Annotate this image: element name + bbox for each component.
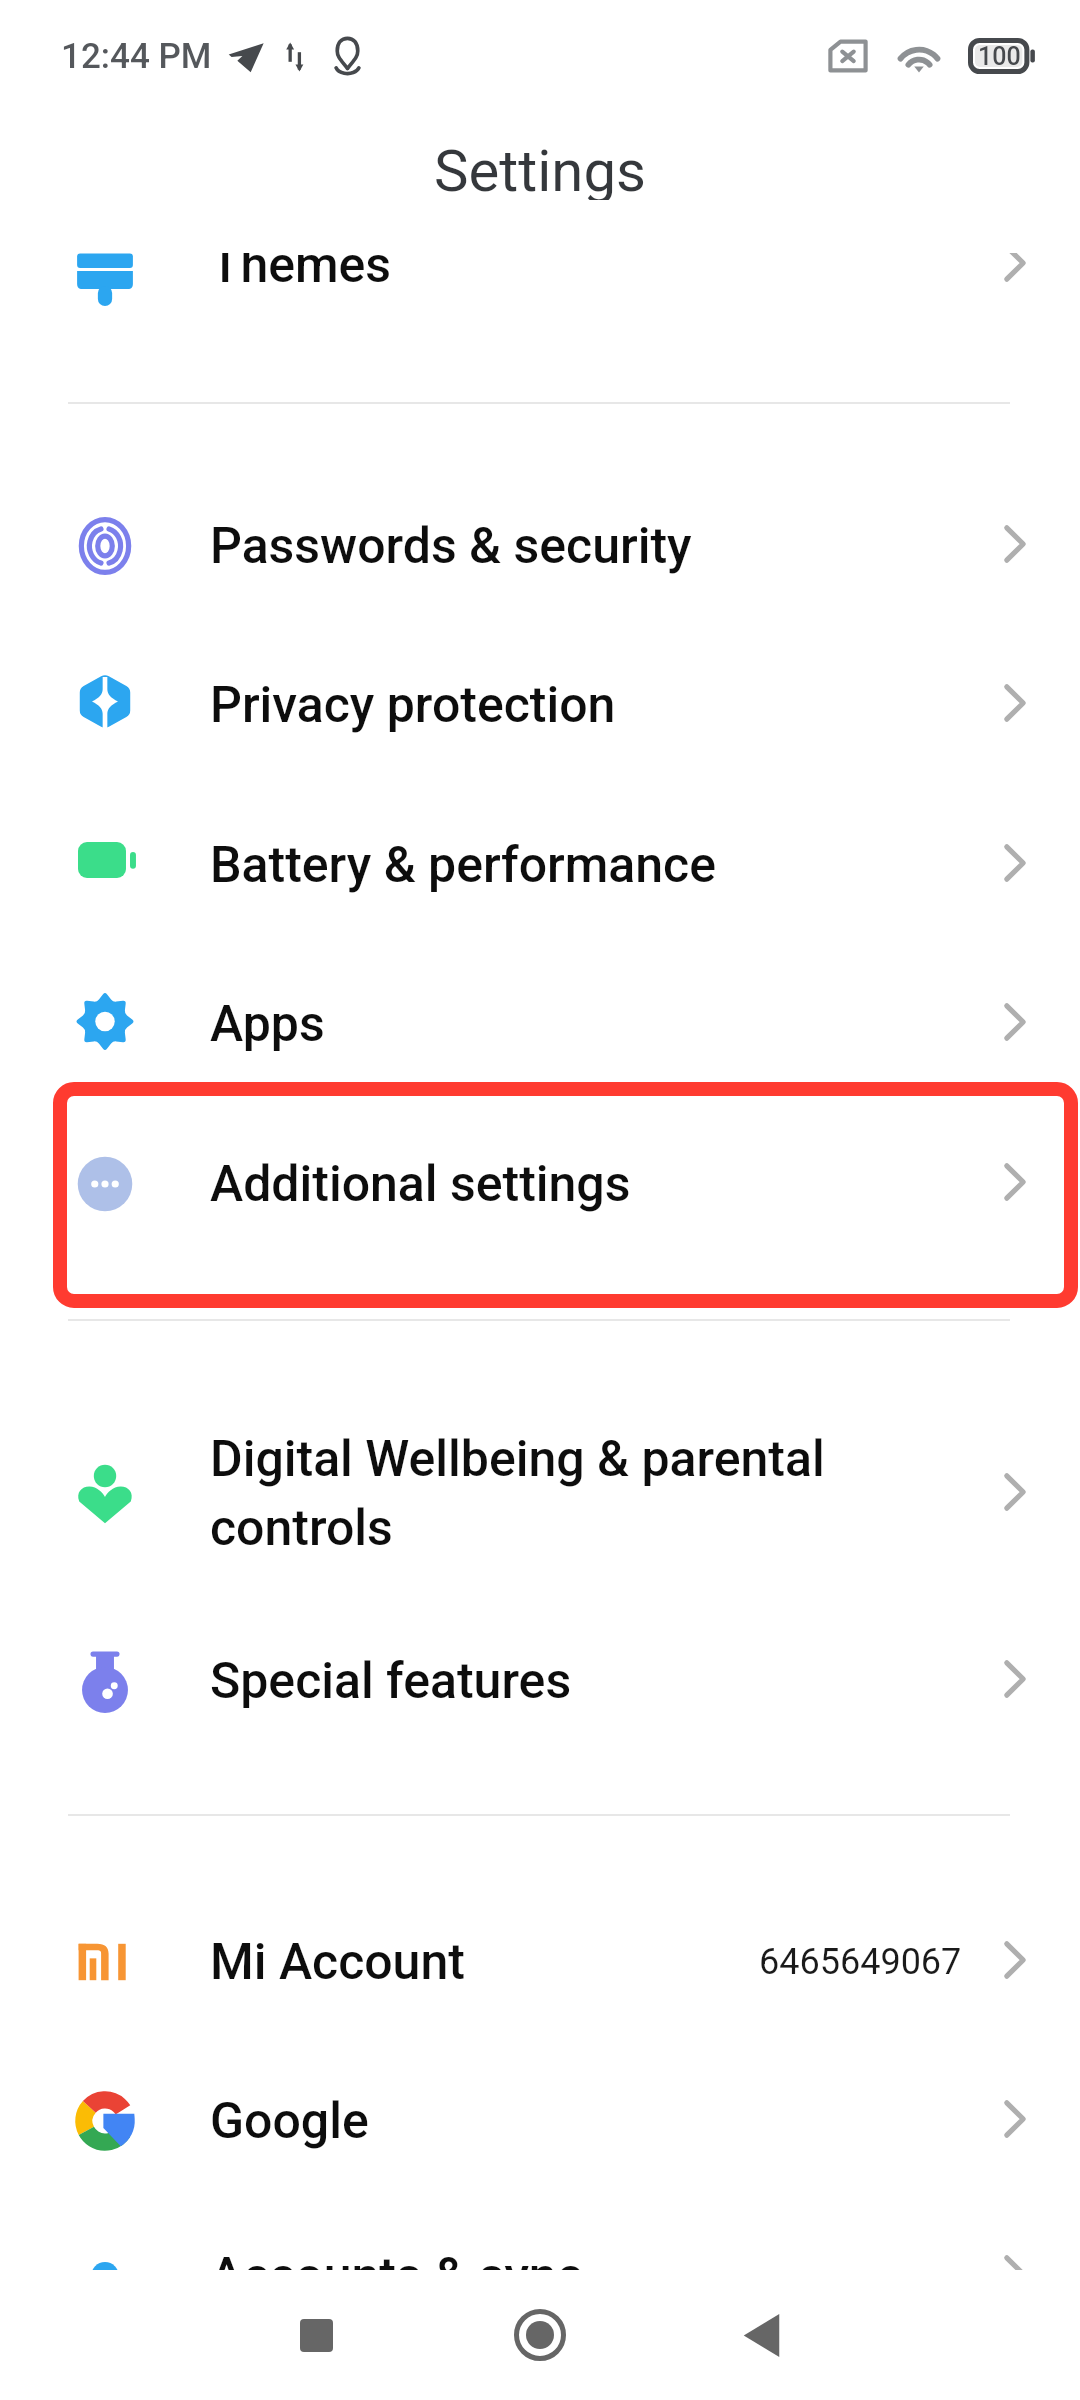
staticText: Google (210, 2092, 369, 2151)
button[interactable]: Google (0, 2042, 1080, 2200)
staticText: Passwords & security (210, 517, 692, 576)
button[interactable]: Mi Account (0, 1883, 1080, 2041)
staticText: 100 (978, 42, 1021, 71)
button[interactable]: Special features (0, 1602, 1080, 1760)
staticText: controls (210, 1499, 393, 1558)
staticText: 12:44 PM (61, 36, 212, 77)
button[interactable]: Home (480, 2275, 600, 2395)
button[interactable]: Privacy protection (0, 626, 1080, 784)
button[interactable]: Additional settings (0, 1105, 1080, 1263)
staticText: Mi Account (210, 1933, 465, 1992)
staticText: Apps (210, 995, 325, 1054)
staticText: Battery & performance (210, 836, 717, 895)
staticText: Special features (210, 1652, 572, 1711)
staticText: Digital Wellbeing & parental (210, 1430, 825, 1489)
staticText: Themes (210, 236, 392, 295)
button[interactable]: Accounts & sync (0, 2197, 1080, 2355)
button[interactable]: Recent apps (256, 2275, 376, 2395)
button[interactable]: Themes (0, 186, 1080, 344)
staticText: Settings (434, 137, 646, 205)
staticText: Additional settings (210, 1155, 631, 1214)
button[interactable]: Back (701, 2275, 821, 2395)
button[interactable]: Battery & performance (0, 786, 1080, 944)
staticText: Accounts & sync (210, 2247, 583, 2306)
button[interactable]: Digital Wellbeing & parental (0, 1404, 1080, 1584)
staticText: Privacy protection (210, 676, 616, 735)
staticText: 6465649067 (759, 1941, 962, 1983)
button[interactable]: Apps (0, 945, 1080, 1103)
button[interactable]: Passwords & security (0, 467, 1080, 625)
